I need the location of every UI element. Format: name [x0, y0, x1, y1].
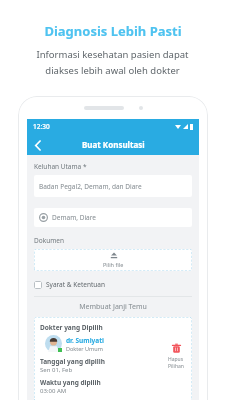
staticText: Pilihan — [168, 363, 184, 370]
staticText: Badan Pegal2, Demam, dan Diare — [39, 182, 142, 191]
button[interactable]: Back — [30, 137, 46, 153]
staticText: Diagnosis Lebih Pasti — [44, 22, 182, 40]
staticText: Buat Konsultasi — [82, 139, 145, 150]
staticText: Pilih file — [103, 261, 124, 268]
staticText: Dokter Umum — [66, 345, 103, 352]
staticText: Hapus — [168, 356, 184, 363]
staticText: Dokter yang Dipilih — [40, 323, 103, 332]
staticText: 12:30 — [33, 122, 50, 131]
staticText: 03:00 AM — [40, 387, 67, 395]
staticText: diakses lebih awal oleh dokter — [45, 64, 180, 77]
staticText: Tanggal yang dipilih — [40, 357, 105, 366]
button[interactable]: Badan Pegal2, Demam, dan Diare — [34, 175, 192, 197]
staticText: Demam, Diare — [52, 213, 96, 222]
staticText: Sen 01, Feb — [40, 366, 73, 374]
button[interactable]: Hapus Pilihan — [166, 341, 186, 372]
staticText: Membuat Janji Temu — [34, 302, 192, 312]
staticText: Keluhan Utama * — [34, 162, 87, 171]
button[interactable]: Syarat & Ketentuan — [34, 279, 105, 290]
staticText: Informasi kesehatan pasien dapat — [36, 48, 189, 61]
staticText: dr. Sumiyati — [66, 336, 104, 345]
staticText: Waktu yang dipilih — [40, 378, 101, 387]
button[interactable]: Pilih file — [34, 249, 192, 271]
staticText: Syarat & Ketentuan — [46, 280, 105, 289]
staticText: Dokumen — [34, 236, 64, 245]
button[interactable]: Demam, Diare — [34, 208, 192, 227]
